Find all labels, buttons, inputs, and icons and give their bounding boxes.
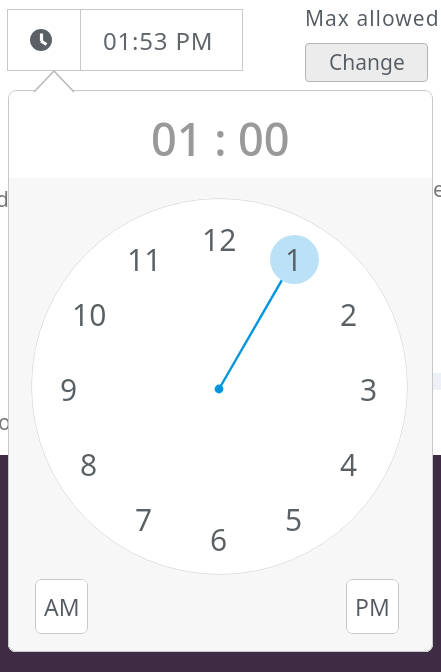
staticText: 2 <box>340 294 358 335</box>
button[interactable]: 6 <box>197 517 241 561</box>
staticText: 1 <box>285 239 303 280</box>
staticText: e <box>433 175 441 204</box>
button[interactable]: 7 <box>122 497 166 541</box>
button[interactable]: PM <box>346 579 399 634</box>
staticText: Change <box>329 48 405 77</box>
button[interactable]: 5 <box>272 497 316 541</box>
staticText: 12 <box>202 219 237 260</box>
staticText: Max allowed duration <box>305 4 441 33</box>
button[interactable]: 01:53 PM <box>7 9 243 71</box>
staticText: 6 <box>210 519 228 560</box>
staticText: 8 <box>80 444 98 485</box>
staticText: 7 <box>135 499 153 540</box>
button[interactable]: 3 <box>347 367 391 411</box>
button[interactable]: 12 <box>197 217 241 261</box>
staticText: PM <box>355 591 390 622</box>
staticText: 01:53 PM <box>103 24 214 57</box>
button[interactable]: 8 <box>67 442 111 486</box>
button[interactable] <box>270 235 319 284</box>
button[interactable]: AM <box>35 579 88 634</box>
staticText: 4 <box>340 444 358 485</box>
button[interactable]: 11 <box>122 237 166 281</box>
staticText: 01 : 00 <box>151 108 290 169</box>
button[interactable]: 2 <box>327 292 371 336</box>
staticText: AM <box>44 591 80 622</box>
staticText: 5 <box>285 499 303 540</box>
button[interactable]: 1 <box>272 237 316 281</box>
button[interactable]: 4 <box>327 442 371 486</box>
staticText: 10 <box>72 294 107 335</box>
button[interactable]: 10 <box>67 292 111 336</box>
staticText: 9 <box>60 369 78 410</box>
staticText: o <box>0 408 11 437</box>
staticText: d <box>0 185 9 214</box>
button[interactable]: 9 <box>47 367 91 411</box>
staticText: 3 <box>360 369 378 410</box>
button[interactable]: Change <box>305 43 428 82</box>
staticText: 11 <box>127 239 162 280</box>
